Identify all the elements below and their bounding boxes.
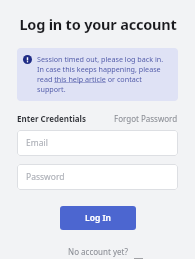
staticText: Forgot Password: [114, 113, 178, 124]
staticText: No account yet?: [68, 246, 128, 257]
button[interactable]: Log In: [60, 206, 136, 230]
button[interactable]: Forgot Password: [114, 113, 178, 124]
staticText: Enter Credentials: [17, 113, 86, 124]
staticText: Email: [26, 137, 48, 149]
button[interactable]: Email: [17, 130, 178, 156]
staticText: Session timed out, please log back in. I…: [37, 54, 171, 94]
button[interactable]: Password: [17, 164, 178, 190]
staticText: Password: [26, 171, 65, 183]
staticText: Log in to your account: [19, 14, 177, 34]
staticText: Log In: [85, 212, 111, 224]
